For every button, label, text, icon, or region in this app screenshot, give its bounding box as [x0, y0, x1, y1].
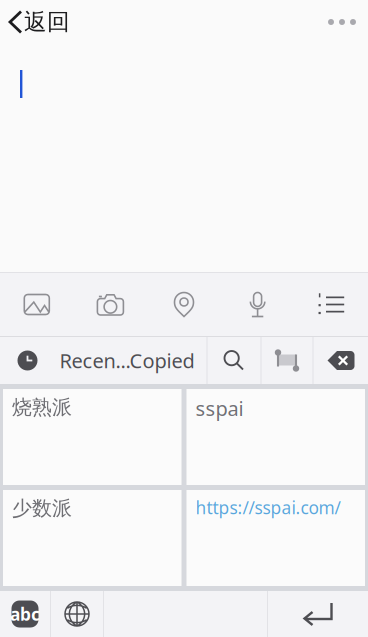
button[interactable]: Delete	[313, 337, 368, 384]
button[interactable]: List	[294, 273, 368, 336]
button[interactable]: abc keyboard	[0, 591, 50, 637]
button[interactable]: Camera	[74, 273, 147, 336]
staticText: https://sspai.com/	[195, 496, 340, 519]
staticText: sspai	[195, 395, 243, 422]
button[interactable]: https://sspai.com/	[186, 490, 365, 586]
staticText: abc	[10, 602, 40, 625]
button[interactable]: Recen...Copied	[0, 337, 206, 384]
staticText: 烧熟派	[12, 395, 72, 420]
button[interactable]: Location	[147, 273, 221, 336]
staticText: 返回	[24, 8, 70, 36]
button[interactable]: 烧熟派	[3, 389, 181, 485]
staticText: Recen...Copied	[59, 347, 194, 374]
button[interactable]: 返回	[0, 0, 80, 44]
button[interactable]: Select text	[261, 337, 312, 384]
button[interactable]: Search	[207, 337, 260, 384]
button[interactable]: Switch keyboard	[51, 591, 103, 637]
button[interactable]: Return	[268, 591, 368, 637]
button[interactable]: 少数派	[3, 490, 181, 586]
button[interactable]: More	[316, 0, 368, 44]
button[interactable]: Photos	[0, 273, 74, 336]
button[interactable]: sspai	[186, 389, 365, 485]
staticText: 少数派	[12, 496, 72, 521]
button[interactable]: Voice input	[221, 273, 294, 336]
